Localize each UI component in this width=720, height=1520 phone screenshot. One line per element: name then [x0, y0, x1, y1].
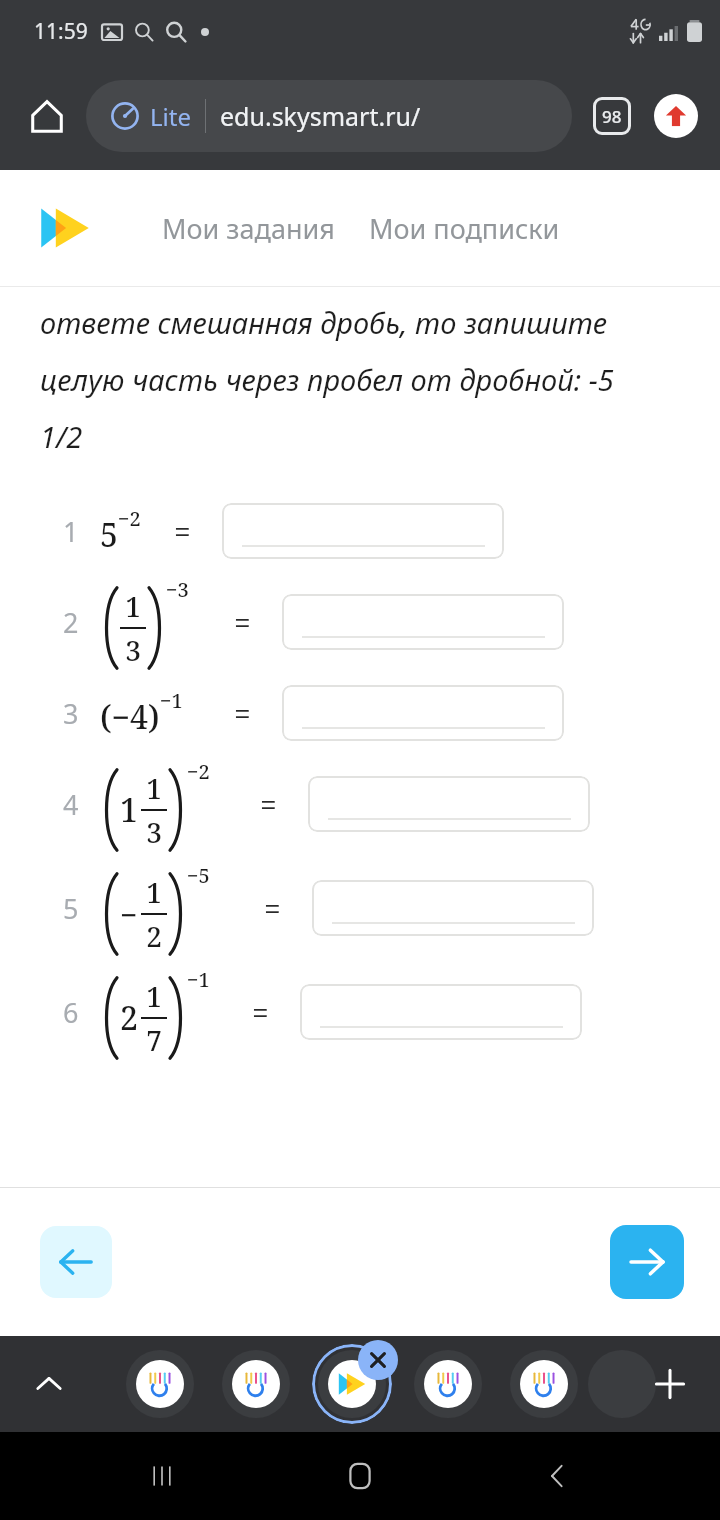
- button[interactable]: New tab: [642, 1356, 698, 1412]
- button[interactable]: Back: [522, 1440, 594, 1512]
- staticText: 3: [63, 695, 79, 732]
- staticText: =: [260, 784, 277, 825]
- staticText: 1/2: [40, 417, 83, 456]
- button[interactable]: Answer field 3: [282, 685, 564, 741]
- button[interactable]: Skysmart logo: [34, 197, 96, 259]
- staticText: 6: [63, 994, 79, 1031]
- button[interactable]: Previous: [40, 1226, 112, 1298]
- button[interactable]: Мои задания: [158, 202, 339, 255]
- staticText: ответе смешанная дробь, то запишите: [40, 303, 608, 342]
- staticText: 1: [146, 769, 162, 807]
- staticText: (−4): [100, 695, 160, 739]
- staticText: 2: [63, 604, 79, 641]
- staticText: 1: [146, 873, 162, 911]
- staticText: 5: [100, 513, 118, 557]
- staticText: 4: [63, 786, 79, 823]
- staticText: =: [264, 888, 281, 929]
- button[interactable]: Recent apps: [126, 1440, 198, 1512]
- button[interactable]: Tab 1: [126, 1350, 194, 1418]
- staticText: Мои задания: [162, 210, 335, 247]
- button[interactable]: Tabs: 98: [586, 90, 638, 142]
- staticText: =: [234, 602, 251, 643]
- button[interactable]: Answer field 2: [282, 594, 564, 650]
- button[interactable]: Answer field 4: [308, 776, 590, 832]
- staticText: 3: [125, 631, 141, 669]
- staticText: −2: [118, 505, 141, 532]
- staticText: 3: [146, 813, 162, 851]
- staticText: 98: [602, 105, 622, 128]
- staticText: =: [174, 511, 191, 552]
- button[interactable]: Lite: [86, 80, 572, 152]
- button[interactable]: Expand: [22, 1357, 76, 1411]
- button[interactable]: Tab 4: [414, 1350, 482, 1418]
- staticText: 2: [146, 917, 162, 955]
- button[interactable]: Home: [18, 87, 76, 145]
- button[interactable]: Home: [324, 1440, 396, 1512]
- staticText: целую часть через пробел от дробной: -5: [40, 360, 614, 399]
- staticText: 1: [120, 788, 138, 832]
- staticText: 1: [146, 977, 162, 1015]
- button[interactable]: Next: [610, 1225, 684, 1299]
- staticText: Lite: [150, 100, 191, 133]
- staticText: −5: [187, 862, 210, 889]
- button[interactable]: Answer field 6: [300, 984, 582, 1040]
- button[interactable]: Close tab: [358, 1340, 398, 1380]
- staticText: −1: [160, 687, 183, 714]
- staticText: −2: [187, 758, 210, 785]
- staticText: −1: [187, 966, 210, 993]
- staticText: edu.skysmart.ru/: [220, 99, 421, 133]
- button[interactable]: Tab 3: [318, 1350, 386, 1418]
- staticText: 7: [146, 1021, 162, 1059]
- button[interactable]: Answer field 1: [222, 503, 504, 559]
- button[interactable]: Tab 2: [222, 1350, 290, 1418]
- button[interactable]: Answer field 5: [312, 880, 594, 936]
- button[interactable]: Tab 6: [588, 1350, 656, 1418]
- staticText: =: [234, 693, 251, 734]
- button[interactable]: Scroll to top: [650, 90, 702, 142]
- staticText: 11:59: [34, 17, 88, 46]
- button[interactable]: Tab 5: [510, 1350, 578, 1418]
- staticText: 2: [120, 996, 138, 1040]
- staticText: −: [120, 894, 138, 935]
- staticText: 1: [125, 587, 141, 625]
- staticText: Мои подписки: [369, 210, 560, 247]
- staticText: =: [252, 992, 269, 1033]
- button[interactable]: Мои подписки: [365, 202, 564, 255]
- staticText: 5: [63, 890, 79, 927]
- staticText: −3: [166, 576, 189, 603]
- staticText: 1: [63, 513, 79, 550]
